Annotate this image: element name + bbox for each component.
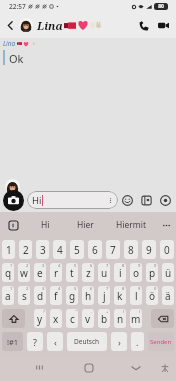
staticText: Ok bbox=[9, 51, 24, 66]
button[interactable]: w bbox=[18, 263, 30, 282]
staticText: Hi bbox=[32, 194, 42, 207]
button[interactable]: y bbox=[34, 309, 46, 328]
button[interactable]: 6 bbox=[88, 240, 102, 259]
button[interactable]: a bbox=[2, 286, 14, 305]
button[interactable]: x bbox=[50, 309, 62, 328]
button[interactable]: 3 bbox=[36, 240, 49, 259]
button[interactable]: ü bbox=[162, 263, 174, 282]
button[interactable]: t bbox=[66, 263, 78, 282]
staticText: q bbox=[5, 266, 12, 280]
button[interactable]: o bbox=[130, 263, 142, 282]
staticText: !#1 bbox=[7, 337, 19, 347]
button[interactable]: l bbox=[130, 286, 142, 305]
staticText: z bbox=[86, 266, 91, 280]
button[interactable]: 9 bbox=[142, 240, 156, 259]
staticText: s bbox=[22, 289, 27, 303]
button[interactable]: i bbox=[114, 263, 126, 282]
staticText: + bbox=[106, 309, 109, 314]
button[interactable]: s bbox=[18, 286, 30, 305]
button[interactable]: m bbox=[130, 309, 142, 328]
staticText: Hiermit bbox=[116, 219, 147, 231]
staticText: ä bbox=[165, 289, 171, 303]
button[interactable]: h bbox=[82, 286, 94, 305]
button[interactable]: Hi bbox=[27, 191, 118, 209]
button[interactable]: › bbox=[111, 332, 127, 351]
staticText: 2 bbox=[26, 286, 29, 291]
staticText: ' bbox=[60, 309, 61, 314]
button[interactable]: Backspace bbox=[151, 309, 174, 328]
staticText: Lina bbox=[3, 39, 16, 48]
button[interactable]: 0 bbox=[160, 240, 174, 259]
staticText: 7 bbox=[106, 286, 109, 291]
button[interactable]: n bbox=[114, 309, 126, 328]
button[interactable]: Camera bbox=[3, 190, 24, 211]
button[interactable]: r bbox=[50, 263, 62, 282]
staticText: r bbox=[54, 266, 59, 280]
button[interactable]: f bbox=[50, 286, 62, 305]
button[interactable]: d bbox=[34, 286, 46, 305]
button[interactable]: Back bbox=[127, 359, 145, 377]
button[interactable]: 8 bbox=[124, 240, 138, 259]
staticText: ? bbox=[43, 309, 45, 314]
button[interactable]: z bbox=[82, 263, 94, 282]
staticText: Lina bbox=[37, 18, 63, 33]
button[interactable]: Video call bbox=[154, 16, 173, 35]
button[interactable]: ? bbox=[27, 332, 43, 351]
staticText: 6 bbox=[90, 286, 93, 291]
button[interactable]: Call bbox=[134, 16, 153, 35]
button[interactable]: Recents bbox=[30, 358, 49, 377]
staticText: Hi bbox=[41, 219, 50, 231]
button[interactable]: More suggestions bbox=[156, 212, 176, 238]
button[interactable]: 5 bbox=[70, 240, 84, 259]
button[interactable]: . bbox=[131, 332, 144, 351]
button[interactable]: Hi bbox=[26, 212, 64, 238]
button[interactable]: b bbox=[98, 309, 110, 328]
button[interactable]: Home bbox=[80, 359, 98, 377]
staticText: › bbox=[118, 336, 121, 348]
button[interactable]: 1 bbox=[2, 240, 15, 259]
button[interactable]: p bbox=[146, 263, 158, 282]
button[interactable]: Stickers bbox=[138, 192, 155, 209]
button[interactable]: Back bbox=[3, 18, 18, 33]
button[interactable]: ö bbox=[146, 286, 158, 305]
button[interactable]: Hiermit bbox=[106, 212, 156, 238]
staticText: ) bbox=[139, 309, 141, 314]
button[interactable]: Deutsch bbox=[67, 332, 107, 351]
button[interactable]: Clipboard bbox=[0, 212, 26, 238]
staticText: 6 bbox=[92, 243, 98, 257]
staticText: 7 bbox=[110, 243, 116, 257]
button[interactable]: 4 bbox=[53, 240, 66, 259]
button[interactable]: !#1 bbox=[2, 332, 23, 351]
staticText: Deutsch bbox=[74, 337, 100, 346]
button[interactable]: Hier bbox=[64, 212, 106, 238]
button[interactable]: 7 bbox=[106, 240, 120, 259]
staticText: x bbox=[53, 312, 59, 326]
button[interactable]: q bbox=[2, 263, 14, 282]
staticText: c bbox=[70, 312, 75, 326]
staticText: 0 bbox=[164, 243, 170, 257]
staticText: h bbox=[85, 289, 92, 303]
button[interactable]: e bbox=[34, 263, 46, 282]
button[interactable]: g bbox=[66, 286, 78, 305]
staticText: a bbox=[5, 289, 11, 303]
button[interactable]: u bbox=[98, 263, 110, 282]
staticText: 8 bbox=[122, 286, 125, 291]
staticText: ‹ bbox=[54, 336, 57, 348]
button[interactable]: Accessibility bbox=[156, 359, 174, 377]
button[interactable]: v bbox=[82, 309, 94, 328]
button[interactable]: j bbox=[98, 286, 110, 305]
button[interactable]: 2 bbox=[19, 240, 32, 259]
staticText: 22:57 bbox=[9, 2, 26, 11]
button[interactable]: k bbox=[114, 286, 126, 305]
staticText: 3 bbox=[42, 263, 45, 268]
button[interactable]: Voice message bbox=[157, 192, 174, 209]
button[interactable]: Emoji bbox=[119, 192, 136, 209]
button[interactable]: Senden bbox=[148, 332, 174, 351]
button[interactable]: c bbox=[66, 309, 78, 328]
staticText: 9 bbox=[138, 286, 141, 291]
button[interactable]: ä bbox=[162, 286, 174, 305]
button[interactable]: Shift bbox=[2, 309, 25, 328]
staticText: 0 bbox=[154, 263, 157, 268]
staticText: p bbox=[149, 266, 156, 280]
button[interactable]: ‹ bbox=[47, 332, 63, 351]
